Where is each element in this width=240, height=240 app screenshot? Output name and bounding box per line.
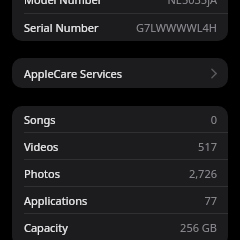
button[interactable]: Model Number — [12, 0, 228, 13]
button[interactable]: AppleCare Services — [12, 58, 228, 88]
button[interactable]: Capacity — [12, 214, 228, 240]
staticText: Serial Number — [24, 20, 99, 35]
staticText: 0 — [210, 112, 217, 127]
staticText: 77 — [204, 193, 217, 208]
staticText: Capacity — [24, 220, 68, 235]
staticText: Applications — [24, 193, 88, 208]
staticText: Photos — [24, 166, 61, 181]
button[interactable]: Videos — [12, 133, 228, 159]
other: Open AppleCare Services — [211, 68, 217, 79]
staticText: Songs — [24, 112, 56, 127]
staticText: Model Number — [24, 0, 103, 7]
button[interactable]: Serial Number — [12, 14, 228, 41]
staticText: AppleCare Services — [24, 66, 123, 81]
button[interactable]: Applications — [12, 187, 228, 213]
staticText: 2,726 — [188, 166, 217, 181]
staticText: G7LWWWWL4H — [136, 20, 217, 35]
button[interactable]: Songs — [12, 106, 228, 132]
staticText: 517 — [198, 139, 217, 154]
staticText: NE5035jA — [167, 0, 217, 7]
staticText: 256 GB — [180, 220, 217, 235]
button[interactable]: Photos — [12, 160, 228, 186]
staticText: Videos — [24, 139, 59, 154]
